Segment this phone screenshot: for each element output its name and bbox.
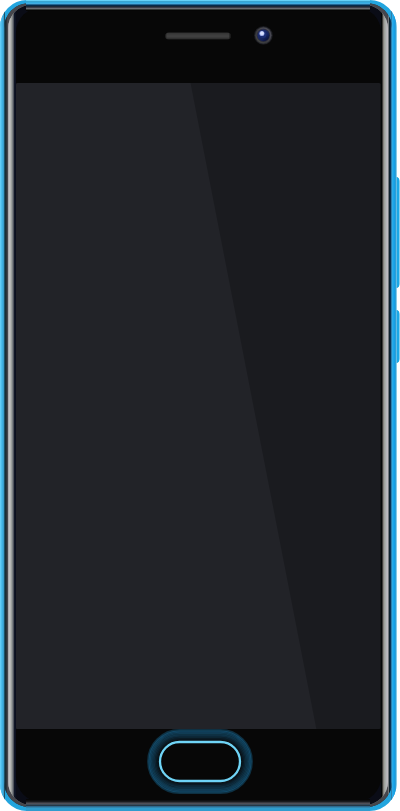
button[interactable]: Blue smartphone front view — [0, 0, 400, 811]
